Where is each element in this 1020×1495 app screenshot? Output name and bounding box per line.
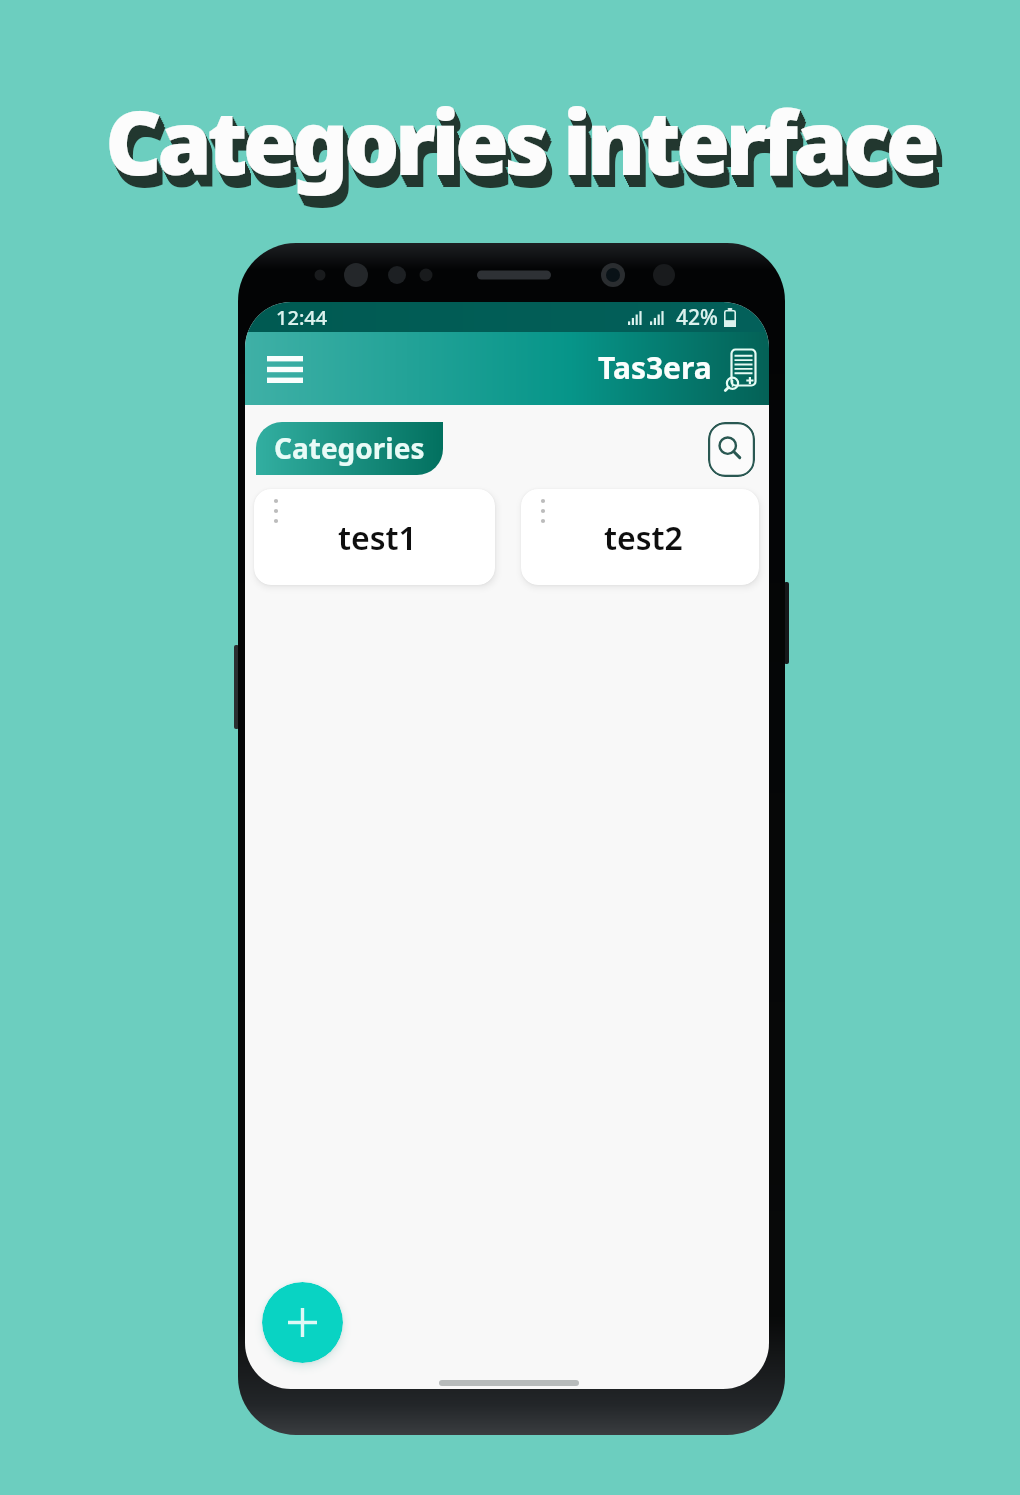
staticText: 12:44 [276, 304, 328, 331]
staticText: Categories interface [10, 81, 1020, 201]
staticText: Categories interface [15, 91, 1020, 211]
staticText: Categories interface [14, 88, 1020, 208]
staticText: Categories interface [13, 86, 1020, 206]
staticText: test2 [604, 516, 683, 560]
staticText: Categories interface [13, 87, 1020, 207]
staticText: Categories interface [16, 93, 1020, 213]
button[interactable]: Add category [262, 1282, 343, 1363]
button[interactable]: test1 [254, 489, 495, 585]
staticText: Categories [274, 429, 425, 467]
staticText: Categories interface [11, 82, 1020, 202]
staticText: Tas3era [598, 347, 712, 388]
button[interactable]: test2 [521, 489, 759, 585]
staticText: Categories interface [12, 85, 1020, 205]
staticText: test1 [338, 516, 417, 560]
staticText: Categories interface [15, 90, 1020, 210]
button[interactable]: Open navigation menu [258, 342, 312, 396]
button[interactable]: Search [708, 422, 755, 477]
staticText: Categories interface [11, 83, 1020, 203]
staticText: Categories interface [14, 89, 1020, 209]
staticText: 42% [676, 303, 718, 332]
button[interactable]: Categories [256, 422, 443, 475]
staticText: Categories interface [12, 84, 1020, 204]
